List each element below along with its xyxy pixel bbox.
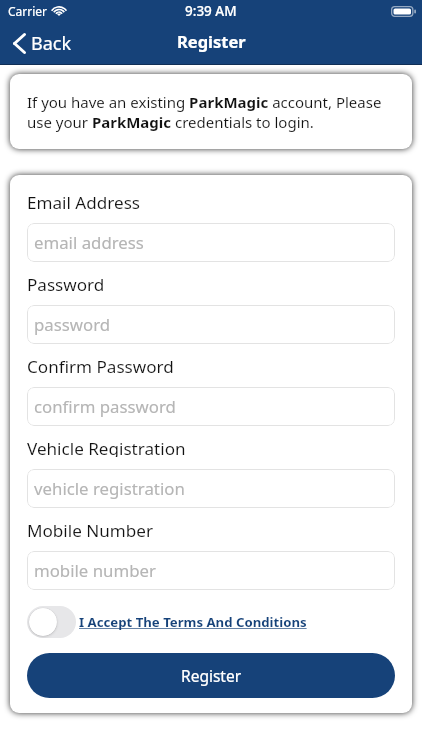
staticText: vehicle registration [34, 477, 185, 500]
staticText: If you have an existing ParkMagic accoun… [27, 92, 395, 132]
staticText: Carrier [8, 3, 48, 19]
staticText: Confirm Password [27, 355, 174, 375]
staticText: 9:39 AM [185, 2, 237, 20]
button[interactable]: Register [27, 653, 395, 698]
button[interactable]: Accept terms toggle [27, 606, 76, 638]
staticText: Vehicle Registration [27, 437, 186, 457]
staticText: mobile number [34, 559, 156, 582]
staticText: Mobile Number [27, 519, 154, 539]
staticText: Password [27, 273, 105, 293]
button[interactable]: mobile number [27, 551, 395, 590]
button[interactable]: email address [27, 223, 395, 262]
button[interactable]: password [27, 305, 395, 344]
staticText: Back [31, 31, 72, 56]
staticText: Email Address [27, 191, 141, 211]
staticText: password [34, 313, 111, 336]
button[interactable]: Back [0, 25, 82, 62]
staticText: email address [34, 231, 144, 254]
staticText: Register [181, 665, 242, 686]
button[interactable]: I Accept The Terms And Conditions [79, 613, 307, 631]
button[interactable]: vehicle registration [27, 469, 395, 508]
staticText: confirm password [34, 395, 176, 418]
button[interactable]: confirm password [27, 387, 395, 426]
staticText: Register [177, 30, 246, 52]
